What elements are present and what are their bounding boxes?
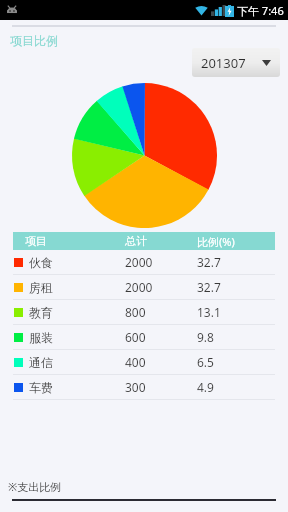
- staticText: 600: [125, 329, 197, 345]
- staticText: 项目比例: [10, 33, 58, 48]
- staticText: 800: [125, 304, 197, 320]
- staticText: 教育: [29, 305, 53, 320]
- staticText: 9.8: [197, 329, 275, 345]
- staticText: 下午 7:46: [237, 3, 284, 18]
- staticText: 房租: [29, 280, 53, 295]
- button[interactable]: 房租: [13, 275, 275, 299]
- staticText: 13.1: [197, 304, 275, 320]
- staticText: 4.9: [197, 379, 275, 395]
- staticText: 2000: [125, 254, 197, 270]
- button[interactable]: 伙食: [13, 250, 275, 274]
- button[interactable]: 201307: [192, 48, 280, 77]
- staticText: 6.5: [197, 354, 275, 370]
- staticText: 通信: [29, 355, 53, 370]
- staticText: 400: [125, 354, 197, 370]
- staticText: 伙食: [29, 255, 53, 270]
- staticText: 比例(%): [197, 234, 275, 249]
- button[interactable]: 服装: [13, 325, 275, 349]
- staticText: 201307: [201, 54, 246, 72]
- staticText: 2000: [125, 279, 197, 295]
- staticText: 项目: [25, 234, 125, 248]
- staticText: 32.7: [197, 254, 275, 270]
- staticText: 总计: [125, 234, 197, 248]
- staticText: ※支出比例: [8, 479, 62, 494]
- button[interactable]: 教育: [13, 300, 275, 324]
- staticText: 32.7: [197, 279, 275, 295]
- button[interactable]: 通信: [13, 350, 275, 374]
- button[interactable]: 车费: [13, 375, 275, 399]
- staticText: 服装: [29, 330, 53, 345]
- staticText: 车费: [29, 380, 53, 395]
- staticText: 300: [125, 379, 197, 395]
